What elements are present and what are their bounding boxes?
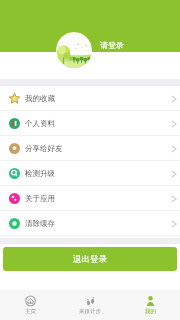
staticText: 退出登录 — [73, 254, 107, 265]
button[interactable]: 来跟计步 — [60, 290, 120, 320]
button[interactable]: 退出登录 — [3, 247, 177, 271]
staticText: 关于应用 — [25, 194, 55, 203]
staticText: 检测升级 — [25, 169, 55, 178]
button[interactable]: 我的收藏 — [0, 86, 180, 111]
staticText: 我的收藏 — [25, 94, 55, 103]
staticText: 主页 — [25, 308, 36, 315]
button[interactable]: 请登录 — [100, 40, 124, 50]
button[interactable]: 我的 — [120, 290, 180, 320]
button[interactable]: 清除缓存 — [0, 211, 180, 236]
button[interactable]: 头像 — [56, 32, 92, 68]
staticText: 来跟计步 — [79, 308, 101, 315]
staticText: 分享给好友 — [25, 144, 63, 153]
button[interactable]: 检测升级 — [0, 161, 180, 186]
button[interactable]: 分享给好友 — [0, 136, 180, 161]
button[interactable]: 关于应用 — [0, 186, 180, 211]
staticText: 我的 — [145, 308, 156, 315]
staticText: 清除缓存 — [25, 219, 55, 228]
button[interactable]: 个人资料 — [0, 111, 180, 136]
button[interactable]: 主页 — [0, 290, 60, 320]
staticText: 个人资料 — [25, 119, 55, 128]
